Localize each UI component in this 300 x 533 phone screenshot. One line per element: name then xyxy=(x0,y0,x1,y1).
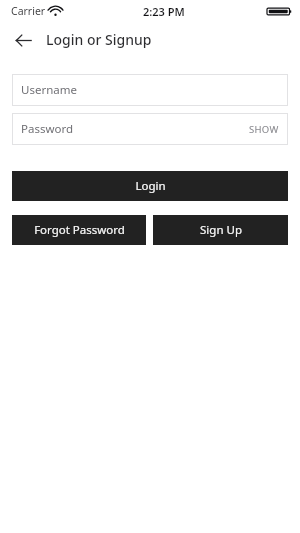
staticText: Username xyxy=(21,82,77,98)
staticText: Sign Up xyxy=(200,222,242,238)
button[interactable]: Username xyxy=(12,74,288,106)
staticText: 2:23 PM xyxy=(143,4,185,19)
staticText: Carrier xyxy=(11,4,46,18)
staticText: Login xyxy=(135,178,166,194)
staticText: Forgot Password xyxy=(34,222,125,238)
button[interactable]: Login xyxy=(12,171,288,201)
button[interactable]: Password xyxy=(12,113,288,145)
button[interactable]: Forgot Password xyxy=(12,215,146,245)
staticText: SHOW xyxy=(249,123,279,136)
button[interactable]: SHOW xyxy=(249,123,279,136)
button[interactable]: Back xyxy=(12,29,34,51)
button[interactable]: Sign Up xyxy=(153,215,288,245)
staticText: Password xyxy=(21,121,74,137)
staticText: Login or Signup xyxy=(46,30,152,49)
